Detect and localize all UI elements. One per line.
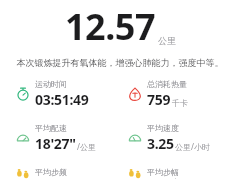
staticText: 3.25 [147, 134, 174, 153]
staticText: 18'27" [35, 134, 76, 153]
staticText: 平均速度 [147, 123, 179, 133]
staticText: 平均步频 [35, 167, 67, 177]
staticText: 运动时间 [35, 79, 67, 89]
staticText: 本次锻炼提升有氧体能，增强心肺能力，强度中等。 [10, 57, 230, 68]
staticText: 759 [147, 90, 171, 109]
button[interactable]: Average speed [120, 123, 240, 153]
staticText: /公里 [77, 141, 96, 152]
staticText: 厘米 [164, 177, 180, 179]
staticText: 03:51:49 [35, 90, 89, 109]
button[interactable]: Average pace [0, 123, 120, 153]
staticText: 公里 [158, 35, 176, 46]
button[interactable]: Exercise time [0, 79, 120, 109]
staticText: 12.57 [65, 2, 155, 51]
button[interactable]: Average cadence [0, 167, 120, 180]
staticText: 千卡 [172, 98, 188, 108]
button[interactable]: Average stride [120, 167, 240, 180]
staticText: 平均配速 [35, 123, 67, 133]
staticText: 总消耗热量 [147, 79, 187, 89]
staticText: 平均步幅 [147, 167, 179, 177]
staticText: 公里/小时 [175, 141, 210, 152]
button[interactable]: Total calories [120, 79, 240, 109]
